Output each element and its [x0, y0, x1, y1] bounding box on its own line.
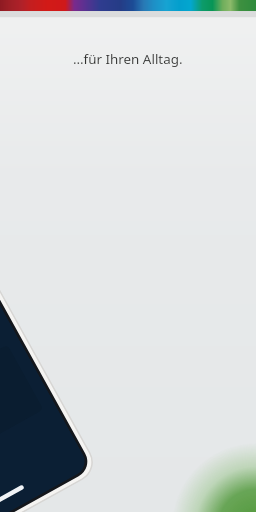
button[interactable]: Smart Home App Werbeseite: [0, 0, 256, 512]
